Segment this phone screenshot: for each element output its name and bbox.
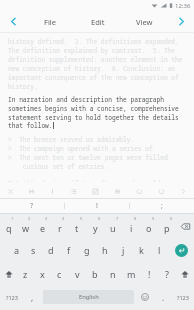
staticText: sometimes begins with a concise, compreh… bbox=[8, 104, 179, 112]
button[interactable]: List bbox=[63, 185, 84, 198]
button[interactable]: ?123 bbox=[0, 286, 23, 308]
button[interactable]: g bbox=[78, 238, 96, 262]
staticText: ? bbox=[30, 201, 34, 211]
staticText: v bbox=[75, 268, 80, 280]
staticText: ; bbox=[161, 201, 163, 211]
button[interactable]: k bbox=[132, 238, 150, 262]
staticText: p bbox=[164, 222, 170, 234]
button[interactable]: 4 bbox=[51, 214, 68, 238]
staticText: > The campaign opened with a series of r… bbox=[8, 144, 186, 152]
staticText: history. bbox=[8, 82, 38, 90]
button[interactable]: z bbox=[17, 262, 34, 286]
button[interactable]: 6 bbox=[86, 214, 104, 238]
button[interactable]: 3 bbox=[34, 214, 51, 238]
staticText: j bbox=[122, 244, 125, 256]
staticText: y bbox=[93, 222, 98, 234]
staticText: definition supplemented: another element… bbox=[8, 55, 183, 63]
staticText: , bbox=[31, 292, 34, 303]
staticText: But this device, if too often used, woul… bbox=[8, 179, 186, 182]
button[interactable]: a bbox=[8, 238, 25, 262]
staticText: h bbox=[102, 244, 108, 256]
button[interactable]: c bbox=[51, 262, 68, 286]
button[interactable]: m bbox=[122, 262, 140, 286]
button[interactable]: Previous menu bbox=[0, 11, 26, 32]
button[interactable]: 9 bbox=[140, 214, 158, 238]
button[interactable]: More bbox=[172, 185, 194, 198]
button[interactable]: View bbox=[121, 11, 168, 32]
button[interactable]: n bbox=[104, 262, 122, 286]
staticText: s bbox=[31, 244, 36, 256]
staticText: 5 bbox=[80, 216, 83, 221]
button[interactable]: Emoji bbox=[136, 286, 154, 308]
staticText: Edit bbox=[91, 17, 105, 27]
button[interactable]: ; bbox=[130, 199, 194, 213]
button[interactable]: 7 bbox=[104, 214, 122, 238]
staticText: 7 bbox=[116, 216, 119, 221]
button[interactable]: Enter bbox=[168, 238, 194, 262]
staticText: m bbox=[127, 268, 136, 280]
button[interactable]: Checkbox bbox=[84, 185, 106, 198]
staticText: a bbox=[14, 244, 20, 256]
button[interactable]: Bold bbox=[21, 185, 42, 198]
button[interactable]: h bbox=[96, 238, 114, 262]
button[interactable]: , bbox=[23, 286, 41, 308]
button[interactable]: b bbox=[86, 262, 104, 286]
staticText: i bbox=[130, 222, 133, 234]
staticText: k bbox=[139, 244, 144, 256]
staticText: File bbox=[44, 17, 56, 27]
staticText: n bbox=[110, 268, 116, 280]
button[interactable]: x bbox=[34, 262, 51, 286]
button[interactable]: Shift bbox=[176, 262, 194, 286]
staticText: u bbox=[110, 222, 116, 234]
button[interactable]: f bbox=[60, 238, 78, 262]
staticText: English bbox=[79, 293, 99, 301]
button[interactable]: Next menu bbox=[168, 11, 194, 32]
button[interactable]: 0 bbox=[158, 214, 176, 238]
button[interactable]: Redo bbox=[128, 185, 150, 198]
button[interactable]: File bbox=[26, 11, 74, 32]
button[interactable]: ! bbox=[140, 262, 158, 286]
staticText: statement serving to hold together the d… bbox=[8, 113, 179, 121]
button[interactable]: Italic bbox=[42, 185, 63, 198]
button[interactable]: 5 bbox=[68, 214, 86, 238]
button[interactable]: Undo style bbox=[0, 185, 21, 198]
button[interactable]: ?123 bbox=[172, 286, 194, 308]
button[interactable]: s bbox=[25, 238, 42, 262]
button[interactable]: Shift bbox=[0, 262, 17, 286]
button[interactable]: Undo bbox=[150, 185, 172, 198]
button[interactable]: 2 bbox=[17, 214, 34, 238]
staticText: ?123 bbox=[177, 294, 189, 301]
button[interactable]: v bbox=[68, 262, 86, 286]
staticText: new conception of history. 6. Conclusion… bbox=[8, 64, 176, 72]
button[interactable]: d bbox=[42, 238, 60, 262]
button[interactable]: j bbox=[114, 238, 132, 262]
button[interactable]: English bbox=[43, 290, 134, 304]
staticText: t bbox=[75, 222, 79, 234]
staticText: z bbox=[23, 268, 28, 280]
button[interactable]: Font bbox=[106, 185, 128, 198]
button[interactable]: 1 bbox=[0, 214, 17, 238]
staticText: 2 bbox=[28, 216, 31, 221]
staticText: 0 bbox=[170, 216, 173, 221]
staticText: 4 bbox=[62, 216, 65, 221]
staticText: > The next ten or twelve pages were fill… bbox=[8, 153, 186, 161]
button[interactable]: . bbox=[154, 286, 172, 308]
staticText: b bbox=[92, 268, 98, 280]
staticText: > The breeze served us admirably. bbox=[8, 135, 135, 143]
staticText: 3 bbox=[45, 216, 48, 221]
button[interactable]: ! bbox=[65, 199, 129, 213]
staticText: ?123 bbox=[6, 294, 18, 301]
button[interactable]: Backspace bbox=[176, 214, 194, 238]
staticText: ? bbox=[165, 268, 169, 280]
staticText: e bbox=[40, 222, 46, 234]
staticText: that follow. bbox=[8, 121, 53, 129]
button[interactable]: 8 bbox=[122, 214, 140, 238]
staticText: View bbox=[136, 17, 153, 27]
button[interactable]: ? bbox=[158, 262, 176, 286]
button[interactable]: ? bbox=[0, 199, 64, 213]
button[interactable]: l bbox=[150, 238, 168, 262]
staticText: g bbox=[84, 244, 90, 256]
button[interactable]: Edit bbox=[74, 11, 121, 32]
staticText: 6 bbox=[98, 216, 101, 221]
staticText: 1 bbox=[11, 216, 14, 221]
